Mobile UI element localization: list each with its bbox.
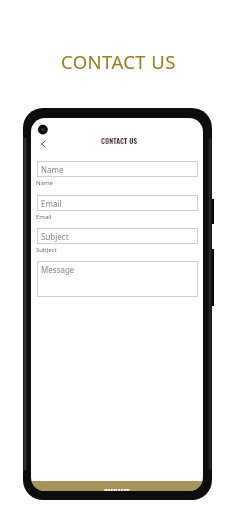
button[interactable]: SUBMIT [31, 481, 203, 491]
staticText: CONTACT US [101, 136, 138, 146]
staticText: Email [36, 213, 52, 221]
staticText: SUBMIT [104, 487, 130, 491]
staticText: Name [36, 179, 53, 187]
staticText: Subject [41, 231, 69, 242]
button[interactable]: Subject [37, 228, 198, 244]
staticText: Email [41, 198, 62, 209]
button[interactable]: Email [37, 195, 198, 211]
staticText: Subject [36, 246, 57, 254]
staticText: Name [41, 164, 64, 175]
staticText: CONTACT US [61, 49, 176, 74]
staticText: Message [41, 264, 75, 275]
button[interactable]: Back [35, 136, 51, 152]
button[interactable]: Name [37, 161, 198, 177]
button[interactable]: Message [37, 261, 198, 297]
